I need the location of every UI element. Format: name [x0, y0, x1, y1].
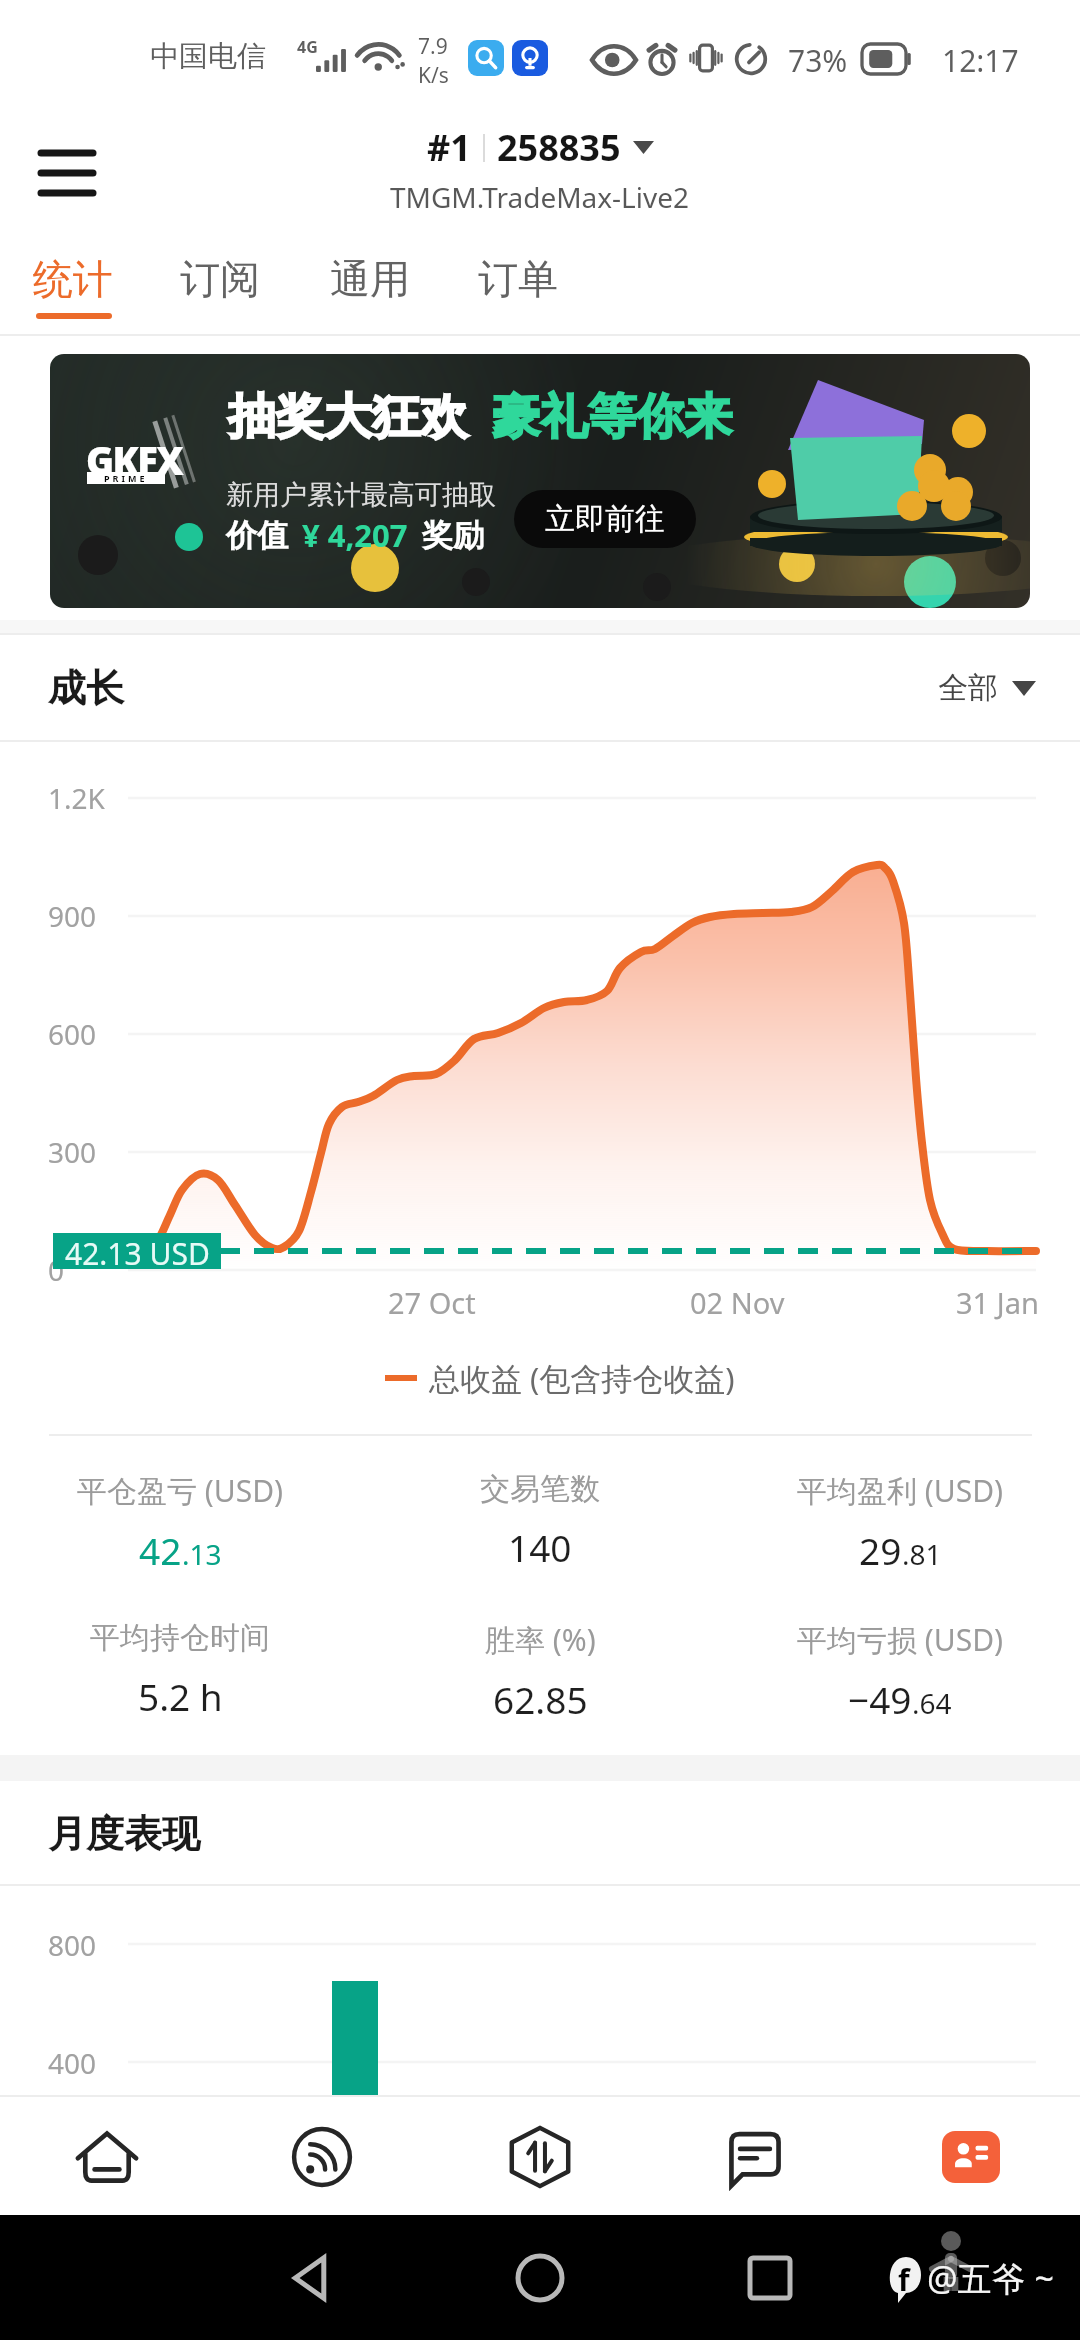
- staticText: 抽奖大狂欢: [228, 387, 468, 447]
- staticText: 总收益 (包含持仓收益): [429, 1357, 735, 1399]
- staticText: 平均盈利 (USD): [797, 1470, 1004, 1511]
- staticText: 新用户累计最高可抽取: [226, 478, 496, 512]
- staticText: 价值: [226, 516, 288, 555]
- staticText: 400: [48, 2044, 97, 2082]
- staticText: 29: [859, 1525, 902, 1575]
- staticText: 600: [48, 1015, 97, 1053]
- button[interactable]: 平均持仓时间: [0, 1619, 360, 1721]
- staticText: 成长: [48, 664, 124, 712]
- staticText: 02 Nov: [690, 1283, 785, 1322]
- staticText: 订阅: [180, 254, 260, 304]
- button[interactable]: 统计: [23, 238, 123, 336]
- staticText: 1.2K: [48, 779, 105, 817]
- staticText: 全部: [938, 669, 998, 707]
- button[interactable]: Recents: [728, 2236, 812, 2320]
- staticText: #1: [427, 123, 471, 172]
- staticText: PRIME: [104, 472, 148, 484]
- staticText: TMGM.TradeMax-Live2: [390, 178, 690, 216]
- staticText: 12:17: [942, 40, 1019, 81]
- staticText: 立即前往: [545, 500, 665, 538]
- staticText: 300: [48, 1133, 97, 1171]
- staticText: 42: [139, 1525, 182, 1575]
- staticText: 800: [48, 1926, 97, 1964]
- staticText: 258835: [497, 123, 621, 172]
- staticText: 62.85: [493, 1674, 588, 1724]
- button[interactable]: 平均盈利 (USD): [720, 1470, 1080, 1575]
- staticText: 7.9: [418, 32, 448, 61]
- staticText: 月度表现: [48, 1810, 200, 1858]
- button[interactable]: Home: [498, 2236, 582, 2320]
- staticText: 4G: [297, 36, 318, 58]
- staticText: 平仓盈亏 (USD): [77, 1470, 284, 1511]
- button[interactable]: 平均亏损 (USD): [720, 1619, 1080, 1724]
- staticText: 订单: [478, 254, 558, 304]
- staticText: 平均持仓时间: [90, 1619, 270, 1657]
- button[interactable]: Back: [268, 2236, 352, 2320]
- staticText: 73%: [788, 40, 848, 81]
- staticText: 42.13 USD: [65, 1233, 210, 1269]
- staticText: @五爷 ~: [927, 2255, 1054, 2301]
- staticText: 胜率 (%): [485, 1619, 596, 1660]
- staticText: 900: [48, 897, 97, 935]
- staticText: −49: [848, 1674, 912, 1724]
- staticText: 交易笔数: [480, 1470, 600, 1508]
- button[interactable]: Trade: [486, 2103, 594, 2211]
- button[interactable]: GKFX Prime promotion banner: [50, 354, 1030, 608]
- button[interactable]: Home: [53, 2103, 161, 2211]
- button[interactable]: 交易笔数: [360, 1470, 720, 1572]
- button[interactable]: 订单: [468, 238, 568, 336]
- staticText: .13: [182, 1535, 222, 1573]
- button[interactable]: #1: [390, 123, 690, 216]
- staticText: 27 Oct: [388, 1283, 476, 1322]
- staticText: 统计: [33, 254, 113, 304]
- staticText: GKFX: [86, 434, 183, 486]
- staticText: 通用: [330, 254, 410, 304]
- staticText: .81: [902, 1535, 942, 1573]
- staticText: f: [898, 2259, 910, 2300]
- staticText: 中国电信: [150, 38, 266, 75]
- staticText: ¥ 4,207: [302, 514, 408, 556]
- staticText: 奖励: [422, 516, 484, 555]
- button[interactable]: 全部: [938, 669, 1036, 707]
- button[interactable]: 通用: [320, 238, 420, 336]
- button[interactable]: 立即前往: [514, 490, 696, 548]
- button[interactable]: Messages: [701, 2103, 809, 2211]
- button[interactable]: Signals: [268, 2103, 376, 2211]
- staticText: 平均亏损 (USD): [797, 1619, 1004, 1660]
- button[interactable]: 胜率 (%): [360, 1619, 720, 1724]
- staticText: 0: [48, 1251, 65, 1289]
- button[interactable]: 订阅: [170, 238, 270, 336]
- staticText: 豪礼等你来: [492, 387, 732, 447]
- button[interactable]: 平仓盈亏 (USD): [0, 1470, 360, 1575]
- staticText: K/s: [418, 61, 449, 90]
- staticText: 31 Jan: [956, 1283, 1039, 1322]
- staticText: 5.2 h: [138, 1671, 223, 1721]
- staticText: 140: [508, 1522, 572, 1572]
- staticText: .64: [912, 1684, 952, 1722]
- button[interactable]: Menu: [26, 132, 108, 214]
- button[interactable]: Profile: [917, 2103, 1025, 2211]
